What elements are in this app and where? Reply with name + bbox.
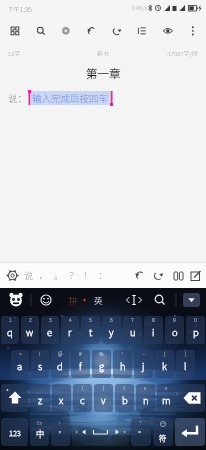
- staticText: ，: [39, 269, 49, 282]
- staticText: 12字: [8, 49, 21, 58]
- button[interactable]: ): [176, 350, 195, 378]
- button[interactable]: ): [94, 384, 113, 412]
- staticText: (: [164, 350, 166, 357]
- staticText: -: [143, 350, 145, 357]
- button[interactable]: ?: [115, 384, 134, 412]
- button[interactable]: [0, 288, 35, 312]
- button[interactable]: [172, 288, 206, 312]
- button[interactable]: 说: [21, 262, 37, 288]
- button[interactable]: %: [92, 350, 111, 378]
- button[interactable]: 8: [144, 316, 163, 344]
- button[interactable]: ！: [51, 418, 70, 446]
- button[interactable]: En: [30, 418, 49, 446]
- button[interactable]: ~: [11, 350, 29, 378]
- button[interactable]: [1, 384, 28, 412]
- button[interactable]: 输入完成后按回车: [28, 90, 113, 106]
- button[interactable]: [29, 19, 51, 41]
- button[interactable]: [54, 19, 76, 41]
- button[interactable]: 。: [52, 262, 66, 288]
- button[interactable]: [104, 288, 138, 312]
- button[interactable]: 符: [153, 418, 173, 446]
- staticText: j: [142, 359, 145, 373]
- button[interactable]: ：: [96, 262, 110, 288]
- button[interactable]: @: [51, 350, 69, 378]
- button[interactable]: [156, 19, 178, 41]
- button[interactable]: [149, 266, 167, 284]
- button[interactable]: !: [31, 350, 49, 378]
- button[interactable]: (: [73, 384, 92, 412]
- button[interactable]: [35, 288, 70, 312]
- button[interactable]: ': [113, 350, 132, 378]
- button[interactable]: [169, 266, 187, 284]
- button[interactable]: ？: [131, 418, 151, 446]
- button[interactable]: [105, 19, 127, 41]
- button[interactable]: ！: [81, 262, 95, 288]
- button[interactable]: -: [134, 350, 153, 378]
- button[interactable]: [80, 19, 102, 41]
- button[interactable]: [178, 384, 205, 412]
- button[interactable]: [186, 266, 204, 284]
- button[interactable]: 7: [123, 316, 142, 344]
- button[interactable]: 1: [1, 316, 19, 344]
- staticText: t: [89, 325, 93, 339]
- button[interactable]: [175, 418, 205, 446]
- staticText: 输入完成后按回车: [32, 91, 109, 105]
- button[interactable]: »: [157, 384, 176, 412]
- button[interactable]: ，: [37, 262, 51, 288]
- staticText: 中: [36, 428, 44, 440]
- staticText: ？: [139, 420, 144, 427]
- staticText: b: [122, 393, 128, 407]
- button[interactable]: z: [30, 384, 50, 412]
- staticText: x: [59, 393, 64, 407]
- button[interactable]: 2: [21, 316, 39, 344]
- staticText: En: [37, 420, 43, 427]
- button[interactable]: [138, 288, 172, 312]
- button[interactable]: [72, 418, 129, 446]
- staticText: ?: [123, 384, 126, 391]
- staticText: k: [162, 359, 167, 373]
- staticText: e: [47, 325, 53, 339]
- staticText: 英: [94, 294, 103, 306]
- button[interactable]: «: [136, 384, 155, 412]
- button[interactable]: ？: [67, 262, 81, 288]
- staticText: p: [193, 325, 199, 339]
- staticText: w: [26, 325, 34, 339]
- staticText: 0.6K/s: [132, 4, 147, 12]
- staticText: 拼: [69, 294, 78, 306]
- button[interactable]: 3: [41, 316, 59, 344]
- button[interactable]: [3, 266, 21, 284]
- staticText: 说: [24, 269, 34, 282]
- staticText: m: [162, 393, 171, 407]
- button[interactable]: (: [155, 350, 174, 378]
- button[interactable]: x: [52, 384, 71, 412]
- staticText: q: [7, 325, 13, 339]
- staticText: d: [57, 359, 63, 373]
- staticText: %: [99, 350, 104, 357]
- staticText: 下午1:36: [7, 4, 32, 13]
- staticText: 6: [110, 316, 113, 323]
- button[interactable]: 0: [186, 316, 205, 344]
- staticText: ！: [58, 420, 63, 427]
- staticText: s: [38, 359, 43, 373]
- staticText: ): [185, 350, 187, 357]
- button[interactable]: #: [71, 350, 90, 378]
- staticText: 。: [54, 269, 64, 282]
- button[interactable]: [131, 266, 149, 284]
- button[interactable]: 9: [165, 316, 184, 344]
- staticText: ：: [98, 269, 108, 282]
- staticText: 第一章: [86, 65, 121, 82]
- button[interactable]: [70, 288, 104, 312]
- button[interactable]: [181, 19, 203, 41]
- button[interactable]: [3, 19, 25, 41]
- staticText: ': [122, 350, 124, 357]
- staticText: ，: [58, 424, 66, 436]
- button[interactable]: 6: [102, 316, 121, 344]
- button[interactable]: 4: [61, 316, 79, 344]
- button[interactable]: [130, 19, 152, 41]
- staticText: a: [17, 359, 23, 373]
- staticText: 7: [131, 316, 134, 323]
- button[interactable]: 5: [81, 316, 100, 344]
- button[interactable]: 123: [1, 418, 28, 446]
- staticText: u: [130, 325, 136, 339]
- staticText: r: [68, 325, 72, 339]
